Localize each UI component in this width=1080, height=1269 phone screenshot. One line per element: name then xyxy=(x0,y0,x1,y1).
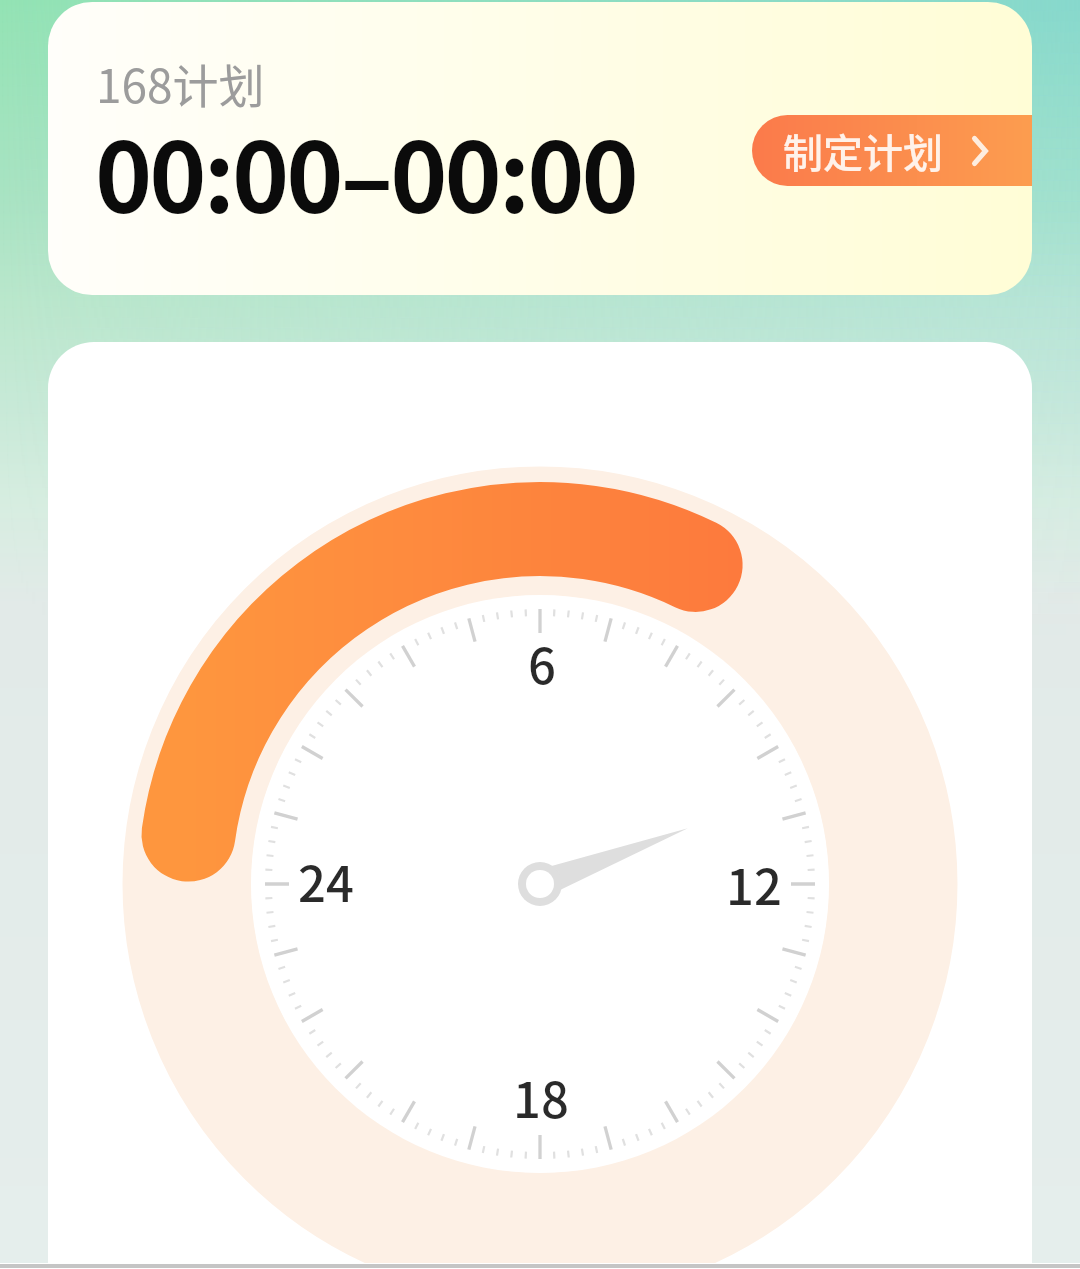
staticText: 00:00–00:00 xyxy=(95,100,636,240)
staticText: 6 xyxy=(528,627,556,698)
staticText: 24 xyxy=(298,845,354,916)
button[interactable]: 6 xyxy=(48,342,1032,1263)
staticText: 制定计划 xyxy=(783,122,943,180)
button[interactable]: 168计划 xyxy=(48,2,1032,295)
staticText: 168计划 xyxy=(96,50,265,117)
staticText: 18 xyxy=(513,1061,569,1132)
staticText: 12 xyxy=(726,848,782,919)
other: Make a plan xyxy=(965,136,995,166)
button[interactable]: 制定计划 xyxy=(752,115,1032,186)
